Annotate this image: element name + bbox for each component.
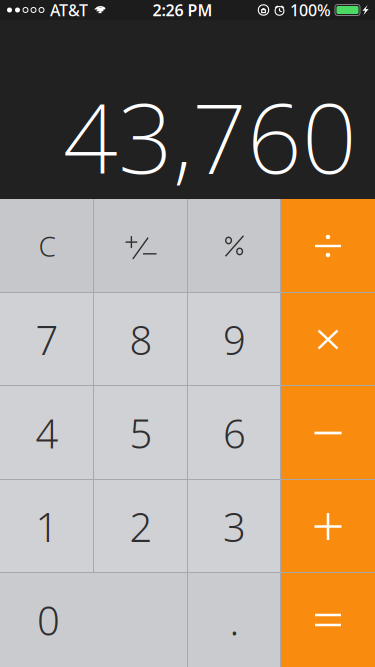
button[interactable]: Plus minus: [94, 199, 188, 293]
staticText: 0: [37, 593, 60, 646]
staticText: 1: [35, 500, 58, 553]
button[interactable]: Percent: [188, 199, 281, 293]
button[interactable]: 0: [0, 573, 188, 667]
staticText: .: [229, 593, 239, 646]
staticText: 9: [223, 313, 246, 366]
button[interactable]: 8: [94, 293, 188, 386]
staticText: 6: [223, 406, 246, 459]
button[interactable]: 7: [0, 293, 94, 386]
button[interactable]: Divide: [281, 199, 375, 293]
staticText: 4: [35, 406, 58, 459]
staticText: 43,760: [63, 72, 357, 200]
button[interactable]: 1: [0, 480, 94, 573]
button[interactable]: 3: [188, 480, 281, 573]
staticText: 2: [129, 500, 152, 553]
button[interactable]: Multiply: [281, 293, 375, 386]
button[interactable]: Equals: [281, 573, 375, 667]
button[interactable]: 4: [0, 386, 94, 480]
staticText: 5: [129, 406, 152, 459]
button[interactable]: 5: [94, 386, 188, 480]
button[interactable]: 9: [188, 293, 281, 386]
button[interactable]: Subtract: [281, 386, 375, 480]
button[interactable]: C: [0, 199, 94, 293]
button[interactable]: 6: [188, 386, 281, 480]
staticText: 3: [223, 500, 246, 553]
staticText: 7: [35, 313, 58, 366]
button[interactable]: 2: [94, 480, 188, 573]
staticText: 2:26 PM: [152, 0, 212, 21]
staticText: C: [38, 227, 55, 265]
staticText: AT&T: [50, 0, 88, 21]
staticText: 100%: [290, 0, 331, 21]
button[interactable]: Add: [281, 480, 375, 573]
button[interactable]: .: [188, 573, 281, 667]
staticText: 8: [129, 313, 152, 366]
